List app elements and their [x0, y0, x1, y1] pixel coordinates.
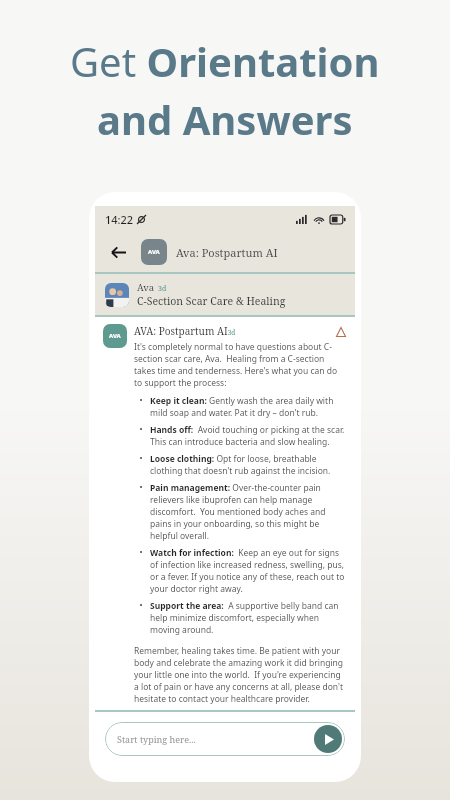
staticText: Start typing here...: [117, 733, 196, 745]
staticText: Hands off: Avoid touching or picking at …: [150, 424, 347, 448]
staticText: C-Section Scar Care & Healing: [137, 294, 286, 308]
staticText: Keep it clean: Gently wash the area dail…: [150, 395, 347, 419]
staticText: Ava: Postpartum AI: [176, 245, 278, 260]
button[interactable]: Send: [314, 725, 342, 753]
button[interactable]: Back: [105, 239, 131, 265]
staticText: and Answers: [97, 92, 353, 146]
staticText: 14:22: [105, 212, 134, 227]
staticText: Get Orientation: [70, 34, 380, 88]
staticText: Support the area: A supportive belly ban…: [150, 600, 347, 636]
staticText: Watch for infection: Keep an eye out for…: [150, 547, 347, 595]
button[interactable]: Warning: [334, 325, 347, 338]
staticText: 3d: [158, 284, 167, 294]
staticText: AVA: [109, 332, 121, 340]
staticText: Remember, healing takes time. Be patient…: [134, 645, 347, 705]
staticText: AVA: [148, 248, 160, 256]
staticText: Loose clothing: Opt for loose, breathabl…: [150, 453, 347, 477]
button[interactable]: Ava: [95, 274, 355, 315]
staticText: Ava: [137, 281, 154, 294]
button[interactable]: AVA: [141, 239, 278, 265]
staticText: It's completely normal to have questions…: [134, 341, 347, 389]
staticText: AVA: Postpartum AI3d: [134, 324, 236, 338]
button[interactable]: Start typing here...: [105, 722, 345, 756]
staticText: Pain management: Over-the-counter pain r…: [150, 482, 347, 542]
